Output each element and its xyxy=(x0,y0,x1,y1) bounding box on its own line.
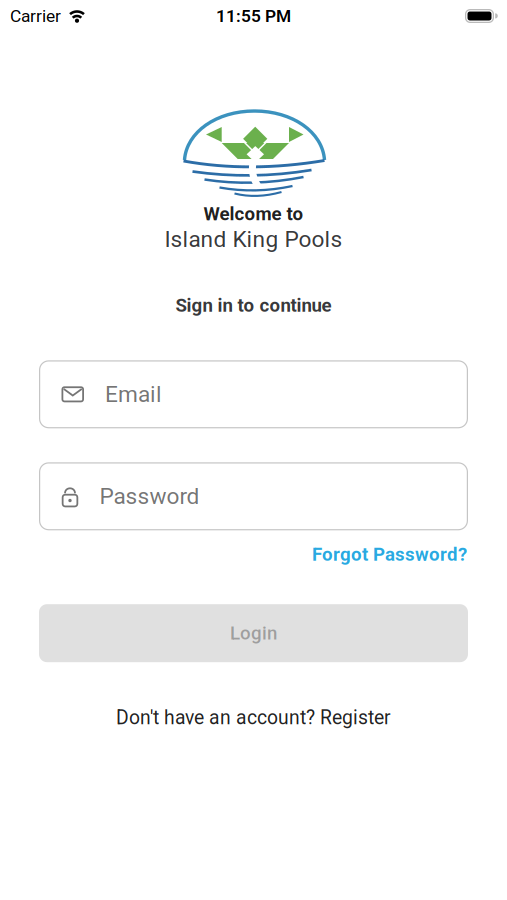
staticText: 11:55 PM xyxy=(216,6,291,26)
button[interactable]: Email xyxy=(39,360,468,428)
button[interactable]: Forgot Password? xyxy=(312,543,467,565)
button[interactable]: Don't have an account? Register xyxy=(116,706,391,729)
staticText: Island King Pools xyxy=(164,226,342,252)
staticText: Password xyxy=(99,483,199,510)
staticText: Welcome to xyxy=(203,203,303,225)
staticText: Forgot Password? xyxy=(312,543,467,565)
staticText: Sign in to continue xyxy=(175,294,331,316)
staticText: Don't have an account? Register xyxy=(116,706,391,729)
button[interactable]: Password xyxy=(39,462,468,530)
button[interactable]: Login xyxy=(39,604,468,662)
staticText: Email xyxy=(105,381,162,408)
staticText: Carrier xyxy=(10,6,61,26)
staticText: Login xyxy=(230,622,277,644)
